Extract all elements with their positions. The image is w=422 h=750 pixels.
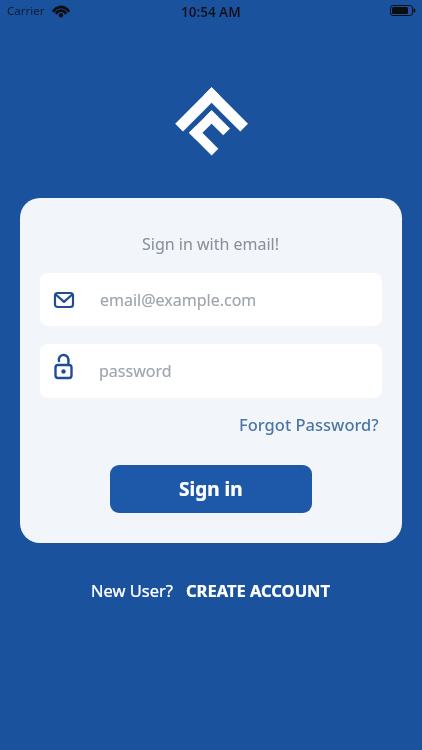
button[interactable]: Sign in (110, 465, 312, 513)
button[interactable]: email@example.com (40, 273, 382, 326)
button[interactable]: password (40, 344, 382, 398)
button[interactable]: CREATE ACCOUNT (186, 579, 331, 601)
staticText: Sign in with email! (142, 233, 280, 255)
button[interactable]: Forgot Password? (239, 413, 379, 435)
staticText: New User? (91, 579, 174, 601)
staticText: Sign in (179, 476, 243, 502)
staticText: 10:54 AM (181, 3, 241, 21)
staticText: Carrier (7, 3, 45, 19)
staticText: password (99, 360, 172, 382)
staticText: email@example.com (100, 289, 257, 311)
